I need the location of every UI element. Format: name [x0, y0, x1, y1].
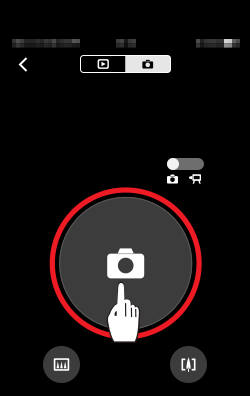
- button[interactable]: Take photo: [50, 187, 202, 339]
- button[interactable]: Photo library: [43, 346, 80, 383]
- button[interactable]: Video mode: [81, 56, 125, 72]
- button[interactable]: Photo mode: [125, 56, 170, 72]
- button[interactable]: Toggle between photo and video: [167, 158, 204, 170]
- button[interactable]: Back: [10, 53, 36, 75]
- button[interactable]: Framing guide: [170, 346, 207, 383]
